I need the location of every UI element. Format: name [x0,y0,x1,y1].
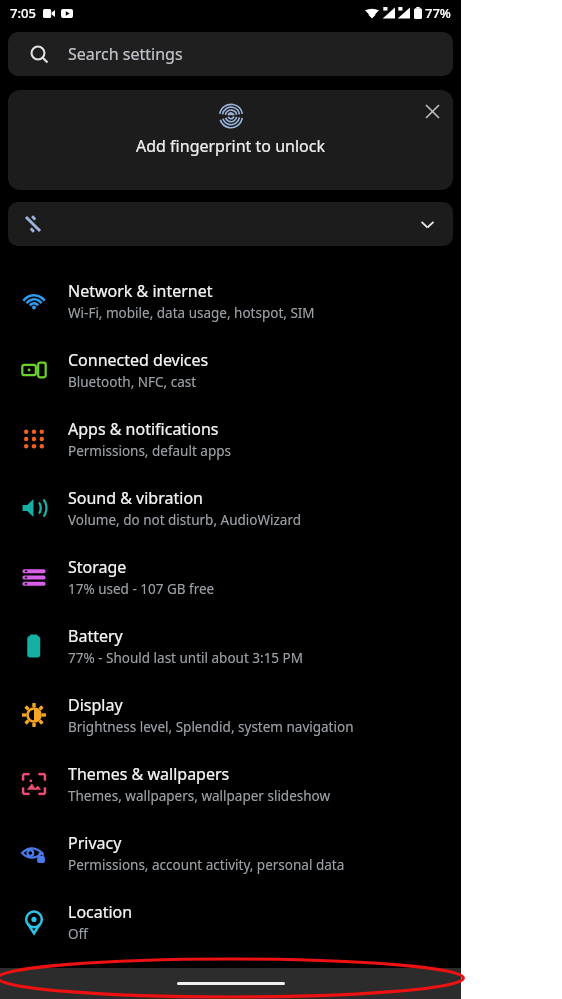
staticText: Volume, do not disturb, AudioWizard [68,511,302,529]
button[interactable]: Dismiss [415,94,449,128]
button[interactable]: Display [0,680,461,749]
staticText: Brightness level, Splendid, system navig… [68,718,354,736]
button[interactable]: Network & internet [0,266,461,335]
staticText: Battery [68,625,123,647]
staticText: 77% [425,4,451,22]
button[interactable]: Connected devices [0,335,461,404]
staticText: 7:05 [10,4,36,22]
staticText: 17% used - 107 GB free [68,580,215,598]
staticText: Display [68,694,123,716]
staticText: Connected devices [68,349,209,371]
staticText: Themes, wallpapers, wallpaper slideshow [68,787,331,805]
button[interactable]: Privacy [0,818,461,887]
staticText: Storage [68,556,127,578]
button[interactable]: Add fingerprint to unlock [8,90,453,190]
button[interactable]: Sound & vibration [0,473,461,542]
other: Expand [415,212,439,236]
button[interactable]: Search settings [8,32,453,76]
button[interactable]: Expand [8,202,453,246]
button[interactable]: Location [0,887,461,956]
staticText: Privacy [68,832,122,854]
staticText: Bluetooth, NFC, cast [68,373,197,391]
button[interactable]: Themes & wallpapers [0,749,461,818]
button[interactable]: Storage [0,542,461,611]
staticText: Sound & vibration [68,487,203,509]
staticText: Permissions, account activity, personal … [68,856,345,874]
staticText: 77% - Should last until about 3:15 PM [68,649,304,667]
staticText: Location [68,901,133,923]
staticText: Add fingerprint to unlock [136,135,325,157]
staticText: Wi-Fi, mobile, data usage, hotspot, SIM [68,304,315,322]
staticText: Apps & notifications [68,418,219,440]
button[interactable]: Apps & notifications [0,404,461,473]
staticText: Network & internet [68,280,213,302]
staticText: Themes & wallpapers [68,763,230,785]
staticText: Permissions, default apps [68,442,231,460]
staticText: Search settings [68,43,183,65]
staticText: Off [68,925,88,943]
button[interactable]: Battery [0,611,461,680]
